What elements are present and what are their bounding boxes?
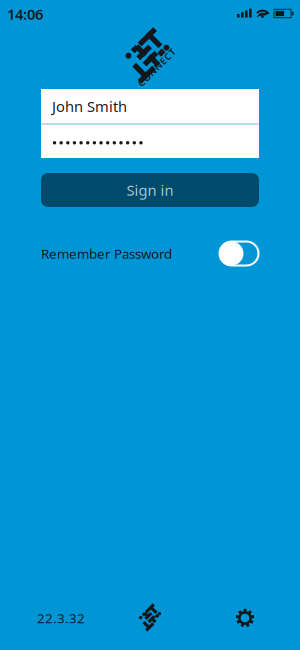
staticText: CONNECT: [132, 61, 181, 74]
button[interactable]: Password: [41, 124, 259, 158]
staticText: Sign in: [126, 180, 173, 200]
button[interactable]: Settings: [234, 607, 256, 629]
button[interactable]: Username: [41, 89, 259, 123]
staticText: John Smith: [52, 96, 127, 116]
staticText: 22.3.32: [37, 609, 85, 627]
staticText: Remember Password: [41, 245, 172, 262]
staticText: 14:06: [7, 4, 43, 24]
button[interactable]: Sign in: [41, 173, 259, 207]
button[interactable]: Remember Password: [219, 241, 259, 266]
